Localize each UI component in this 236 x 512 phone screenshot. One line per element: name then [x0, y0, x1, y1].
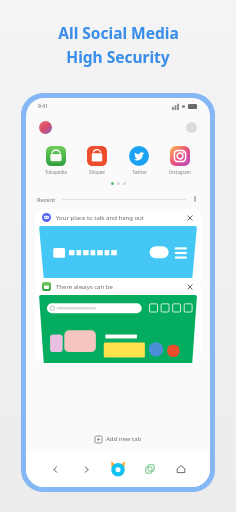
- button[interactable]: Tokopedia: [36, 146, 76, 175]
- staticText: High Security: [66, 46, 170, 67]
- staticText: All Social Media: [58, 22, 179, 43]
- staticText: 9:41: [38, 103, 48, 110]
- button[interactable]: Shopee: [77, 146, 117, 175]
- button[interactable]: Twitter: [119, 146, 159, 175]
- staticText: Twitter: [132, 169, 147, 175]
- button[interactable]: Tabs: [137, 456, 163, 482]
- button[interactable]: Your place to talk and hang out: [35, 209, 201, 287]
- button[interactable]: Close tab: [186, 214, 194, 222]
- button[interactable]: More options: [191, 195, 199, 203]
- button[interactable]: Add new tab: [26, 427, 210, 451]
- button[interactable]: Instagram: [160, 146, 200, 175]
- staticText: Instagram: [169, 169, 191, 175]
- staticText: Tokopedia: [45, 169, 67, 175]
- staticText: There always can be: [56, 283, 113, 291]
- button[interactable]: Profile: [39, 121, 52, 134]
- button[interactable]: Home: [168, 456, 194, 482]
- button[interactable]: Browser home: [105, 456, 131, 482]
- button[interactable]: Close tab: [186, 283, 194, 291]
- staticText: Shopee: [89, 169, 105, 175]
- staticText: Your place to talk and hang out: [56, 214, 144, 222]
- staticText: Add new tab: [106, 435, 142, 443]
- button[interactable]: There always can be: [35, 278, 201, 363]
- button[interactable]: Forward: [73, 456, 99, 482]
- button[interactable]: Back: [42, 456, 68, 482]
- staticText: Recent: [37, 196, 56, 203]
- button[interactable]: Menu: [186, 122, 197, 133]
